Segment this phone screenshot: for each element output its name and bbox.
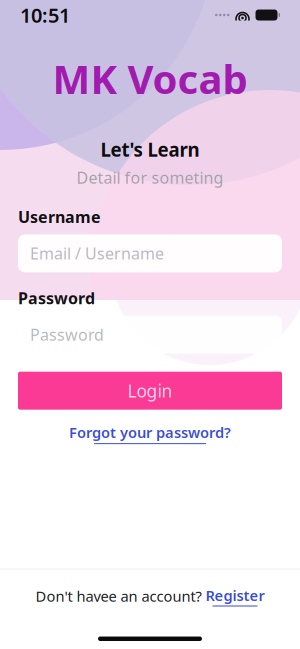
button[interactable]: Don't havee an account? xyxy=(0,569,300,622)
staticText: Password xyxy=(18,287,95,309)
button[interactable]: Forgot your password? xyxy=(18,423,282,444)
staticText: Forgot your password? xyxy=(69,423,231,442)
button[interactable]: Login xyxy=(18,372,282,410)
staticText: Email / Username xyxy=(30,243,164,264)
staticText: Don't havee an account? xyxy=(35,586,201,606)
staticText: Login xyxy=(127,379,172,402)
button[interactable]: Password xyxy=(18,316,282,354)
staticText: Password xyxy=(30,324,104,345)
staticText: 10:51 xyxy=(20,2,70,28)
staticText: Register xyxy=(205,585,264,605)
staticText: Detail for someting xyxy=(76,167,223,188)
staticText: Let's Learn xyxy=(100,137,199,162)
staticText: Username xyxy=(18,206,101,227)
staticText: MK Vocab xyxy=(52,52,247,105)
button[interactable]: Email / Username xyxy=(18,234,282,272)
